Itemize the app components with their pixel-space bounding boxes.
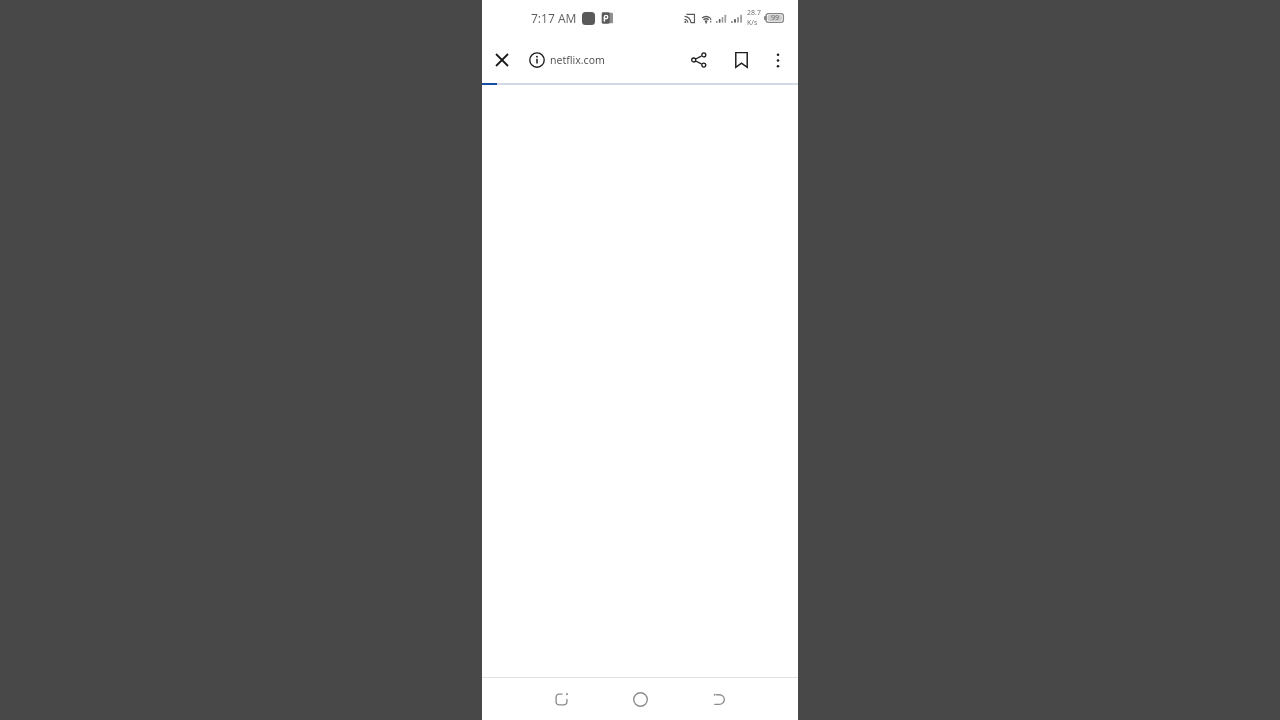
staticText: K/s: [747, 18, 758, 28]
staticText: 7:17 AM: [531, 10, 577, 26]
button[interactable]: Back: [688, 678, 750, 720]
staticText: 28.7: [747, 8, 761, 18]
button[interactable]: Home: [609, 678, 671, 720]
button[interactable]: Close: [488, 46, 516, 74]
button[interactable]: More options: [764, 46, 792, 74]
button[interactable]: Recents: [530, 678, 592, 720]
button[interactable]: Bookmark: [718, 37, 764, 83]
staticText: netflix.com: [550, 53, 605, 67]
staticText: 99: [771, 13, 780, 23]
button[interactable]: netflix.com: [529, 52, 605, 68]
button[interactable]: Share: [680, 41, 718, 79]
